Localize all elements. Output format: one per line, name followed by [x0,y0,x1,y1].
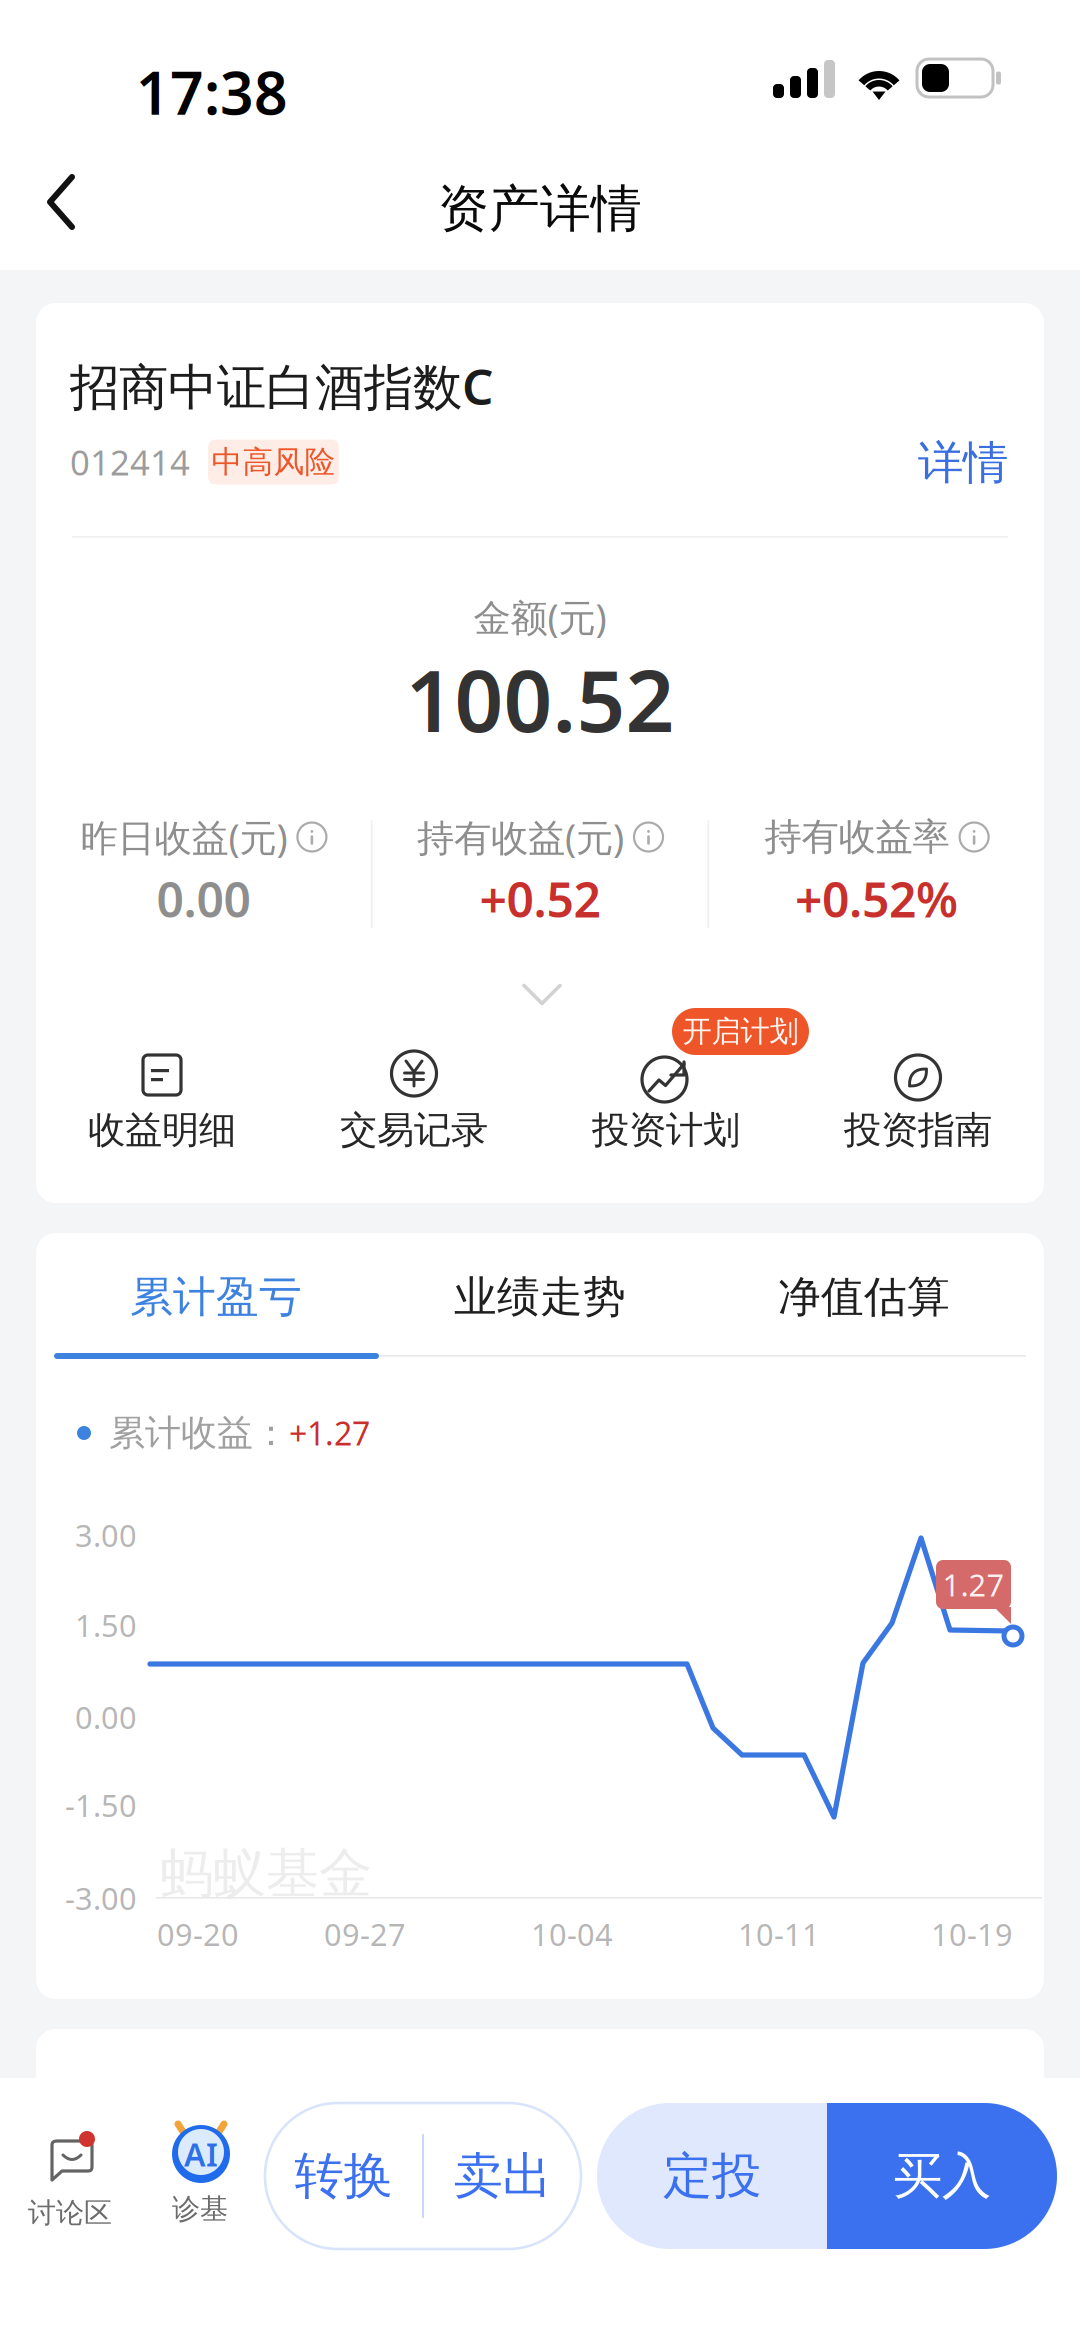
staticText: 1.27 [942,1564,1004,1605]
staticText: 业绩走势 [454,1271,626,1323]
staticText: 开启计划 [682,1013,798,1049]
staticText: 定投 [663,2146,761,2206]
staticText: -1.50 [65,1785,137,1825]
staticText: 中高风险 [211,443,335,481]
staticText: 17:38 [136,53,288,131]
staticText: 0.00 [156,867,250,931]
button[interactable]: 讨论区 [18,2110,144,2244]
staticText: 10-19 [931,1914,1013,1954]
staticText: 持有收益率 [765,814,950,860]
staticText: 持有收益(元) [417,812,624,862]
staticText: 基金公告与资讯 [80,2076,423,2137]
button[interactable]: 业绩走势 [378,1243,702,1351]
button[interactable]: AI [152,2104,268,2238]
staticText: 昨日收益(元) [80,812,287,862]
staticText: 详情 [918,435,1008,491]
staticText: 投资指南 [844,1107,992,1153]
staticText: 卖出 [453,2146,551,2206]
staticText: 收益明细 [88,1107,236,1153]
staticText: 招商中证白酒指数C [70,353,493,418]
button[interactable]: 详情 [858,431,1008,495]
button[interactable]: 累计盈亏 [54,1243,378,1351]
staticText: 投资计划 [592,1107,740,1153]
staticText: 100.52 [405,642,674,756]
staticText: -3.00 [65,1878,137,1918]
staticText: 012414 [70,439,190,485]
button[interactable]: Expand details [480,963,600,1019]
staticText: 1.50 [75,1605,137,1645]
button[interactable]: 净值估算 [702,1243,1026,1351]
staticText: 09-27 [324,1914,406,1954]
button[interactable]: 买入 [827,2103,1057,2249]
button[interactable]: 转换 [265,2103,581,2249]
button[interactable]: 定投 [597,2103,827,2249]
staticText: 诊基 [172,2192,228,2226]
staticText: +0.52 [479,867,600,931]
staticText: 累计收益： [109,1411,289,1455]
staticText: 讨论区 [28,2196,112,2230]
staticText: 0.00 [75,1697,137,1737]
staticText: +1.27 [289,1412,370,1454]
staticText: 10-04 [531,1914,613,1954]
button[interactable]: Back [0,136,142,270]
button[interactable]: 投资计划 [540,1019,792,1169]
button[interactable]: 投资指南 [792,1019,1044,1169]
staticText: 买入 [893,2146,991,2206]
staticText: 资产详情 [438,178,642,240]
staticText: 蚂蚁基金 [160,1841,372,1906]
staticText: 交易记录 [340,1107,488,1153]
staticText: 09-20 [157,1914,239,1954]
staticText: 转换 [294,2146,392,2206]
staticText: 金额(元) [473,592,606,642]
staticText: +0.52% [795,867,958,931]
staticText: 3.00 [75,1515,137,1555]
staticText: 净值估算 [778,1271,950,1323]
staticText: AI [184,2133,218,2175]
staticText: 10-11 [738,1914,820,1954]
button[interactable]: 收益明细 [36,1019,288,1169]
staticText: 累计盈亏 [130,1271,302,1323]
button[interactable]: 交易记录 [288,1019,540,1169]
